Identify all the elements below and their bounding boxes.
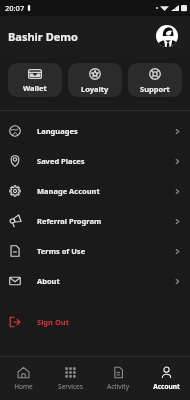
button[interactable]: Sign Out: [0, 312, 190, 332]
staticText: Services: [58, 382, 83, 391]
staticText: Account: [153, 382, 180, 391]
button[interactable]: Manage Account: [0, 176, 190, 206]
staticText: Referral Program: [37, 216, 102, 226]
staticText: About: [37, 276, 60, 286]
staticText: Sign Out: [37, 317, 70, 327]
button[interactable]: Services: [47, 357, 94, 400]
button[interactable]: Terms of Use: [0, 236, 190, 266]
button[interactable]: Languages: [0, 116, 190, 146]
staticText: Terms of Use: [37, 246, 86, 256]
button[interactable]: Saved Places: [0, 146, 190, 176]
staticText: Support: [140, 84, 170, 94]
button[interactable]: Activity: [94, 357, 142, 400]
button[interactable]: About: [0, 266, 190, 296]
staticText: Home: [14, 382, 33, 391]
staticText: Languages: [37, 126, 78, 136]
staticText: Manage Account: [37, 186, 100, 196]
button[interactable]: Wallet: [8, 63, 62, 97]
staticText: 20:07: [5, 3, 25, 13]
staticText: Loyalty: [81, 84, 109, 94]
staticText: Saved Places: [37, 156, 85, 166]
button[interactable]: Loyalty: [68, 63, 122, 97]
staticText: Bashir Demo: [8, 29, 78, 44]
staticText: Activity: [107, 382, 129, 391]
button[interactable]: Home: [0, 357, 47, 400]
button[interactable]: Referral Program: [0, 206, 190, 236]
button[interactable]: Profile: [156, 25, 178, 47]
button[interactable]: Account: [142, 357, 190, 400]
button[interactable]: Support: [128, 63, 182, 97]
staticText: Wallet: [23, 83, 47, 93]
